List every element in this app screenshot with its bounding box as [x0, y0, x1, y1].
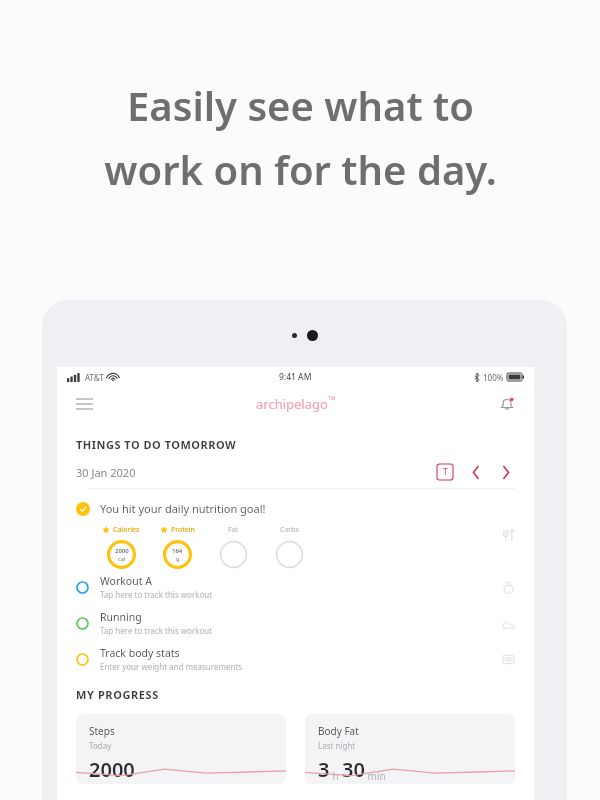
- staticText: 2000: [115, 547, 129, 555]
- staticText: g: [176, 555, 180, 562]
- staticText: cal: [118, 555, 126, 562]
- button[interactable]: Today: [437, 464, 453, 480]
- staticText: TM: [328, 395, 336, 402]
- staticText: Tap here to track this workout: [100, 625, 213, 636]
- staticText: 2000: [89, 756, 135, 783]
- staticText: Track body stats: [100, 646, 180, 660]
- staticText: Easily see what to: [127, 78, 474, 132]
- staticText: work on for the day.: [104, 142, 497, 196]
- staticText: You hit your daily nutrition goal!: [100, 501, 266, 516]
- other: Scale: [498, 649, 518, 669]
- button[interactable]: Notifications: [494, 391, 520, 417]
- other: Nutrition: [498, 525, 518, 545]
- button[interactable]: Track body stats: [57, 641, 534, 677]
- staticText: 164: [172, 547, 183, 555]
- staticText: Last night: [318, 740, 356, 751]
- staticText: MY PROGRESS: [76, 687, 159, 702]
- staticText: Body Fat: [318, 724, 359, 738]
- button[interactable]: You hit your daily nutrition goal!: [57, 501, 534, 569]
- staticText: Protein: [171, 525, 195, 535]
- staticText: 3: [318, 756, 330, 783]
- staticText: Carbs: [280, 525, 299, 535]
- button[interactable]: Workout A: [57, 569, 534, 605]
- staticText: T: [443, 466, 448, 478]
- other: Weights: [498, 577, 518, 597]
- button[interactable]: Running: [57, 605, 534, 641]
- button[interactable]: Body Fat: [305, 714, 515, 784]
- button[interactable]: Next day: [497, 463, 515, 481]
- staticText: Steps: [89, 724, 115, 738]
- staticText: Today: [89, 740, 112, 751]
- button[interactable]: Steps: [76, 714, 286, 784]
- staticText: THINGS TO DO TOMORROW: [76, 437, 237, 452]
- staticText: 9:41 AM: [279, 371, 312, 383]
- staticText: archipelago: [256, 395, 328, 413]
- staticText: Tap here to track this workout: [100, 589, 213, 600]
- staticText: Workout A: [100, 574, 152, 588]
- button[interactable]: Previous day: [467, 463, 485, 481]
- button[interactable]: Menu: [71, 391, 97, 417]
- staticText: Enter your weight and measurements: [100, 661, 243, 672]
- staticText: 30 Jan 2020: [76, 465, 136, 480]
- staticText: min: [365, 769, 386, 783]
- staticText: h: [330, 769, 342, 783]
- staticText: Fat: [228, 525, 239, 535]
- other: Running shoe: [498, 613, 518, 633]
- staticText: 100%: [483, 372, 504, 383]
- staticText: AT&T: [85, 372, 104, 383]
- staticText: 30: [342, 756, 365, 783]
- staticText: Running: [100, 610, 142, 624]
- staticText: Calories: [113, 525, 140, 535]
